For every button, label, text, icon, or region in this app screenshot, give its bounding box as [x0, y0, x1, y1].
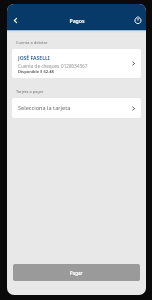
button[interactable]: JOSÉ FASELLI: [12, 49, 141, 78]
staticText: Disponible $ 62.48: [18, 69, 54, 74]
staticText: Tarjeta a pagar: [16, 89, 44, 94]
staticText: 0128034567: [61, 63, 88, 69]
staticText: Pagar: [70, 270, 83, 276]
staticText: Pagos: [69, 17, 85, 24]
button[interactable]: Pagar: [13, 264, 140, 281]
button[interactable]: Log out: [130, 12, 146, 28]
button[interactable]: Selecciona la tarjeta: [12, 98, 141, 118]
staticText: Cuenta a debitar: [16, 40, 48, 45]
staticText: Cuenta de cheques: [18, 63, 61, 69]
button[interactable]: Back: [7, 12, 23, 28]
staticText: Selecciona la tarjeta: [18, 104, 71, 112]
staticText: JOSÉ FASELLI: [18, 55, 50, 62]
